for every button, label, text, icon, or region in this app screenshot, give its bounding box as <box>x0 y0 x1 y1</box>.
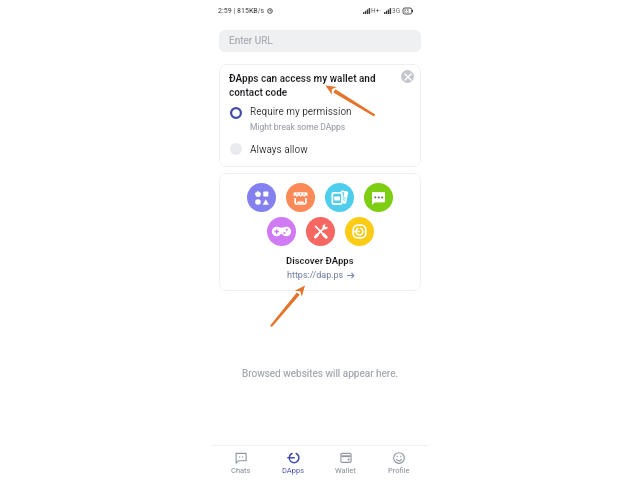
staticText: Wallet <box>335 466 356 475</box>
button[interactable]: Chats <box>215 446 267 480</box>
staticText: Enter URL <box>229 35 273 47</box>
button[interactable]: Utilities <box>306 217 335 246</box>
button[interactable]: DApps <box>267 446 319 480</box>
button[interactable]: Shapes <box>247 183 276 212</box>
button[interactable]: Games <box>267 217 296 246</box>
staticText: Require my permission <box>250 106 352 118</box>
staticText: Chats <box>231 466 251 475</box>
staticText: https://dap.ps <box>287 270 344 281</box>
staticText: Browsed websites will appear here. <box>211 368 429 380</box>
staticText: Always allow <box>250 144 308 156</box>
button[interactable]: Enter URL <box>219 30 421 52</box>
staticText: 3G <box>392 7 401 15</box>
button[interactable]: Marketplace <box>286 183 315 212</box>
staticText: Discover ÐApps <box>286 255 354 266</box>
button[interactable]: Close <box>401 70 414 83</box>
button[interactable]: Wallet <box>319 446 372 480</box>
staticText: H+· <box>371 7 382 15</box>
button[interactable]: Exchange <box>345 217 374 246</box>
staticText: DApps <box>282 466 305 475</box>
button[interactable]: Require my permission <box>219 102 421 132</box>
button[interactable]: Collectibles <box>325 183 354 212</box>
staticText: Might break some DApps <box>250 122 346 132</box>
button[interactable]: Always allow <box>219 142 421 164</box>
button[interactable]: Profile <box>372 446 425 480</box>
staticText: 2:59 | 815KB/s <box>218 7 265 15</box>
button[interactable]: https://dap.ps <box>287 270 354 281</box>
staticText: Profile <box>388 466 410 475</box>
staticText: ÐApps can access my wallet and contact c… <box>229 73 376 99</box>
staticText: 85 <box>404 9 410 14</box>
button[interactable]: Social <box>364 183 393 212</box>
